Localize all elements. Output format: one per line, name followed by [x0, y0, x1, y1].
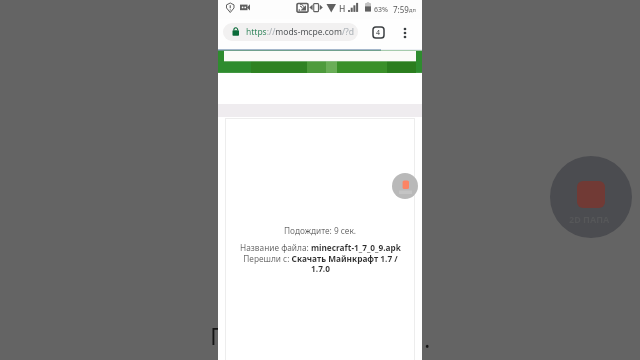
staticText: Подождите: 9 сек.	[284, 225, 357, 236]
staticText: https://mods-mcpe.com/?d	[246, 26, 354, 38]
staticText: 2D ПАПА	[569, 213, 610, 225]
staticText: 63%	[374, 5, 388, 15]
button[interactable]: Download	[392, 173, 418, 199]
staticText: 4	[376, 28, 381, 38]
button[interactable]: https://mods-mcpe.com/?d	[223, 23, 358, 41]
staticText: Перешли с: Скачать Майнкрафт 1.7 / 1.7.0	[243, 253, 398, 274]
staticText: .	[424, 322, 431, 355]
button[interactable]: Tabs: 4	[368, 22, 389, 43]
button[interactable]: More options	[394, 22, 415, 43]
staticText: П	[210, 319, 228, 352]
staticText: дп	[409, 6, 416, 13]
staticText: H	[339, 3, 346, 15]
staticText: 7:59	[393, 4, 409, 15]
staticText: Название файла: minecraft-1_7_0_9.apk	[240, 242, 401, 253]
